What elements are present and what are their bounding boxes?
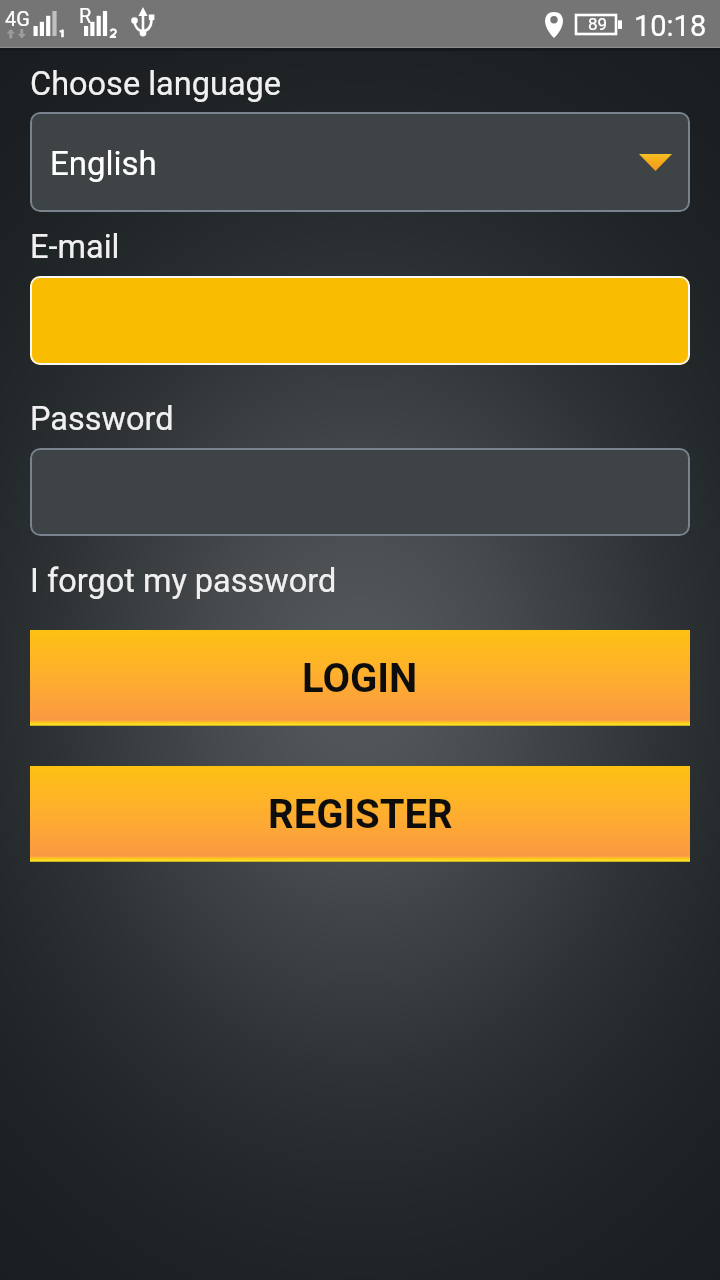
staticText: 4G: [5, 7, 30, 30]
staticText: I forgot my password: [30, 562, 337, 600]
button[interactable]: Password input field: [30, 448, 690, 536]
staticText: 10:18: [634, 9, 707, 43]
staticText: Choose language: [30, 65, 282, 103]
button[interactable]: E-mail input field: [30, 276, 690, 365]
staticText: English: [50, 144, 157, 183]
button[interactable]: English: [30, 112, 690, 212]
staticText: Password: [30, 400, 174, 438]
button[interactable]: REGISTER: [30, 766, 690, 862]
staticText: REGISTER: [268, 791, 453, 838]
staticText: LOGIN: [302, 655, 418, 702]
other: Open language list: [639, 154, 672, 171]
staticText: 89: [588, 14, 608, 34]
button[interactable]: I forgot my password: [30, 562, 337, 600]
button[interactable]: LOGIN: [30, 630, 690, 726]
staticText: R: [79, 4, 92, 27]
staticText: E-mail: [30, 228, 120, 266]
